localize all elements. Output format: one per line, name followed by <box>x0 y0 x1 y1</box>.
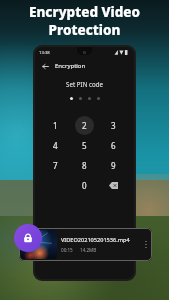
button[interactable]: Back <box>39 60 51 72</box>
staticText: 14.2MB <box>80 247 97 253</box>
button[interactable]: 1 <box>41 115 70 135</box>
button[interactable]: 4 <box>41 135 70 155</box>
button[interactable]: More options <box>142 230 150 259</box>
staticText: 6 <box>111 140 116 151</box>
staticText: 13:38 <box>39 50 50 56</box>
staticText: 4 <box>53 140 58 151</box>
staticText: 0 <box>82 180 87 191</box>
staticText: 00:15 <box>61 247 73 253</box>
button[interactable]: 6 <box>99 135 128 155</box>
button[interactable]: 7 <box>41 155 70 175</box>
button[interactable]: 8 <box>70 155 99 175</box>
staticText: 3 <box>111 120 116 131</box>
button[interactable]: 9 <box>99 155 128 175</box>
staticText: 8 <box>82 160 87 171</box>
button[interactable]: Encrypted <box>14 224 42 252</box>
staticText: Set PIN code <box>35 80 134 88</box>
staticText: 9 <box>111 160 116 171</box>
button[interactable]: 5 <box>70 135 99 155</box>
button[interactable]: 3 <box>99 115 128 135</box>
staticText: Encryption <box>55 62 86 70</box>
staticText: 5 <box>82 140 87 151</box>
staticText: 1 <box>53 120 58 131</box>
staticText: 7 <box>53 160 58 171</box>
button[interactable]: VIDEO202105201536.mp4 <box>19 228 152 261</box>
button[interactable]: 0 <box>70 175 99 195</box>
button[interactable]: Delete <box>99 175 128 195</box>
staticText: Encrypted Video Protection <box>0 3 169 39</box>
button[interactable]: 2 <box>70 115 99 135</box>
staticText: 2 <box>82 120 87 131</box>
staticText: VIDEO202105201536.mp4 <box>61 236 130 244</box>
